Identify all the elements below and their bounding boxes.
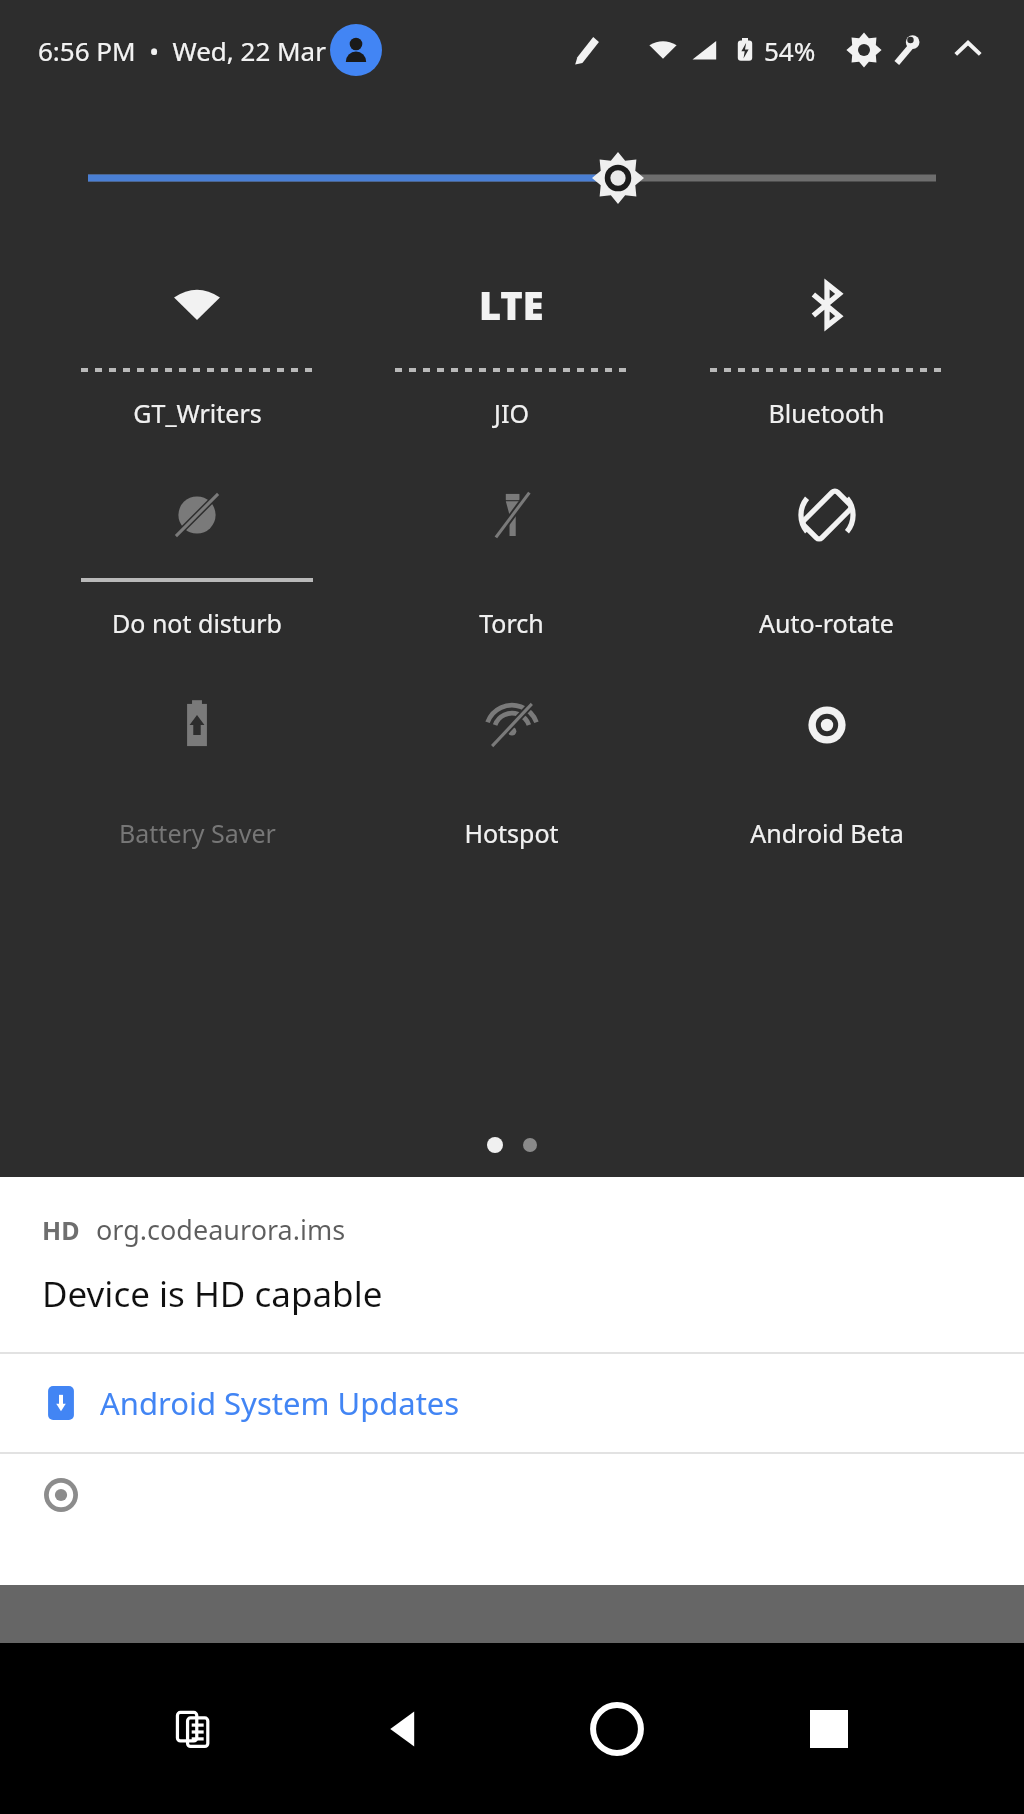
button[interactable]: Battery Saver — [40, 672, 354, 856]
button[interactable]: Collapse — [950, 32, 986, 68]
button[interactable]: Recents — [723, 1643, 935, 1814]
button[interactable] — [0, 1454, 1024, 1548]
button[interactable]: Android Beta — [669, 672, 984, 856]
button[interactable]: Bluetooth — [669, 252, 984, 436]
button[interactable]: Torch — [354, 462, 669, 646]
staticText: Hotspot — [464, 816, 559, 850]
button[interactable]: Brightness — [88, 148, 936, 208]
staticText: Torch — [479, 606, 544, 640]
button[interactable]: Back — [299, 1643, 511, 1814]
staticText: Auto-rotate — [759, 606, 894, 640]
staticText: org.codeaurora.ims — [96, 1211, 346, 1248]
button[interactable]: User profile — [330, 24, 382, 76]
button[interactable]: HD — [0, 1177, 1024, 1352]
button[interactable]: Auto-rotate — [669, 462, 984, 646]
button[interactable]: Settings — [844, 30, 884, 70]
button[interactable]: LTE — [354, 252, 669, 436]
button[interactable]: Screenshot — [88, 1643, 299, 1814]
staticText: Do not disturb — [112, 606, 282, 640]
staticText: Android Beta — [750, 816, 904, 850]
staticText: Battery Saver — [119, 816, 276, 850]
staticText: Android System Updates — [100, 1382, 460, 1424]
staticText: Device is HD capable — [42, 1270, 383, 1318]
staticText: LTE — [479, 279, 544, 331]
staticText: GT_Writers — [133, 396, 262, 430]
button[interactable]: Do not disturb — [40, 462, 354, 646]
staticText: 6:56 PM • Wed, 22 Mar — [38, 33, 326, 68]
staticText: HD — [42, 1213, 80, 1247]
staticText: Bluetooth — [768, 396, 885, 430]
button[interactable]: Android System Updates — [0, 1354, 1024, 1452]
button[interactable]: GT_Writers — [40, 252, 354, 436]
button[interactable]: Developer options — [886, 32, 922, 68]
staticText: JIO — [494, 396, 529, 430]
button[interactable]: Edit — [568, 32, 604, 68]
button[interactable]: Home — [511, 1643, 723, 1814]
button[interactable]: Hotspot — [354, 672, 669, 856]
staticText: 54% — [764, 33, 816, 68]
